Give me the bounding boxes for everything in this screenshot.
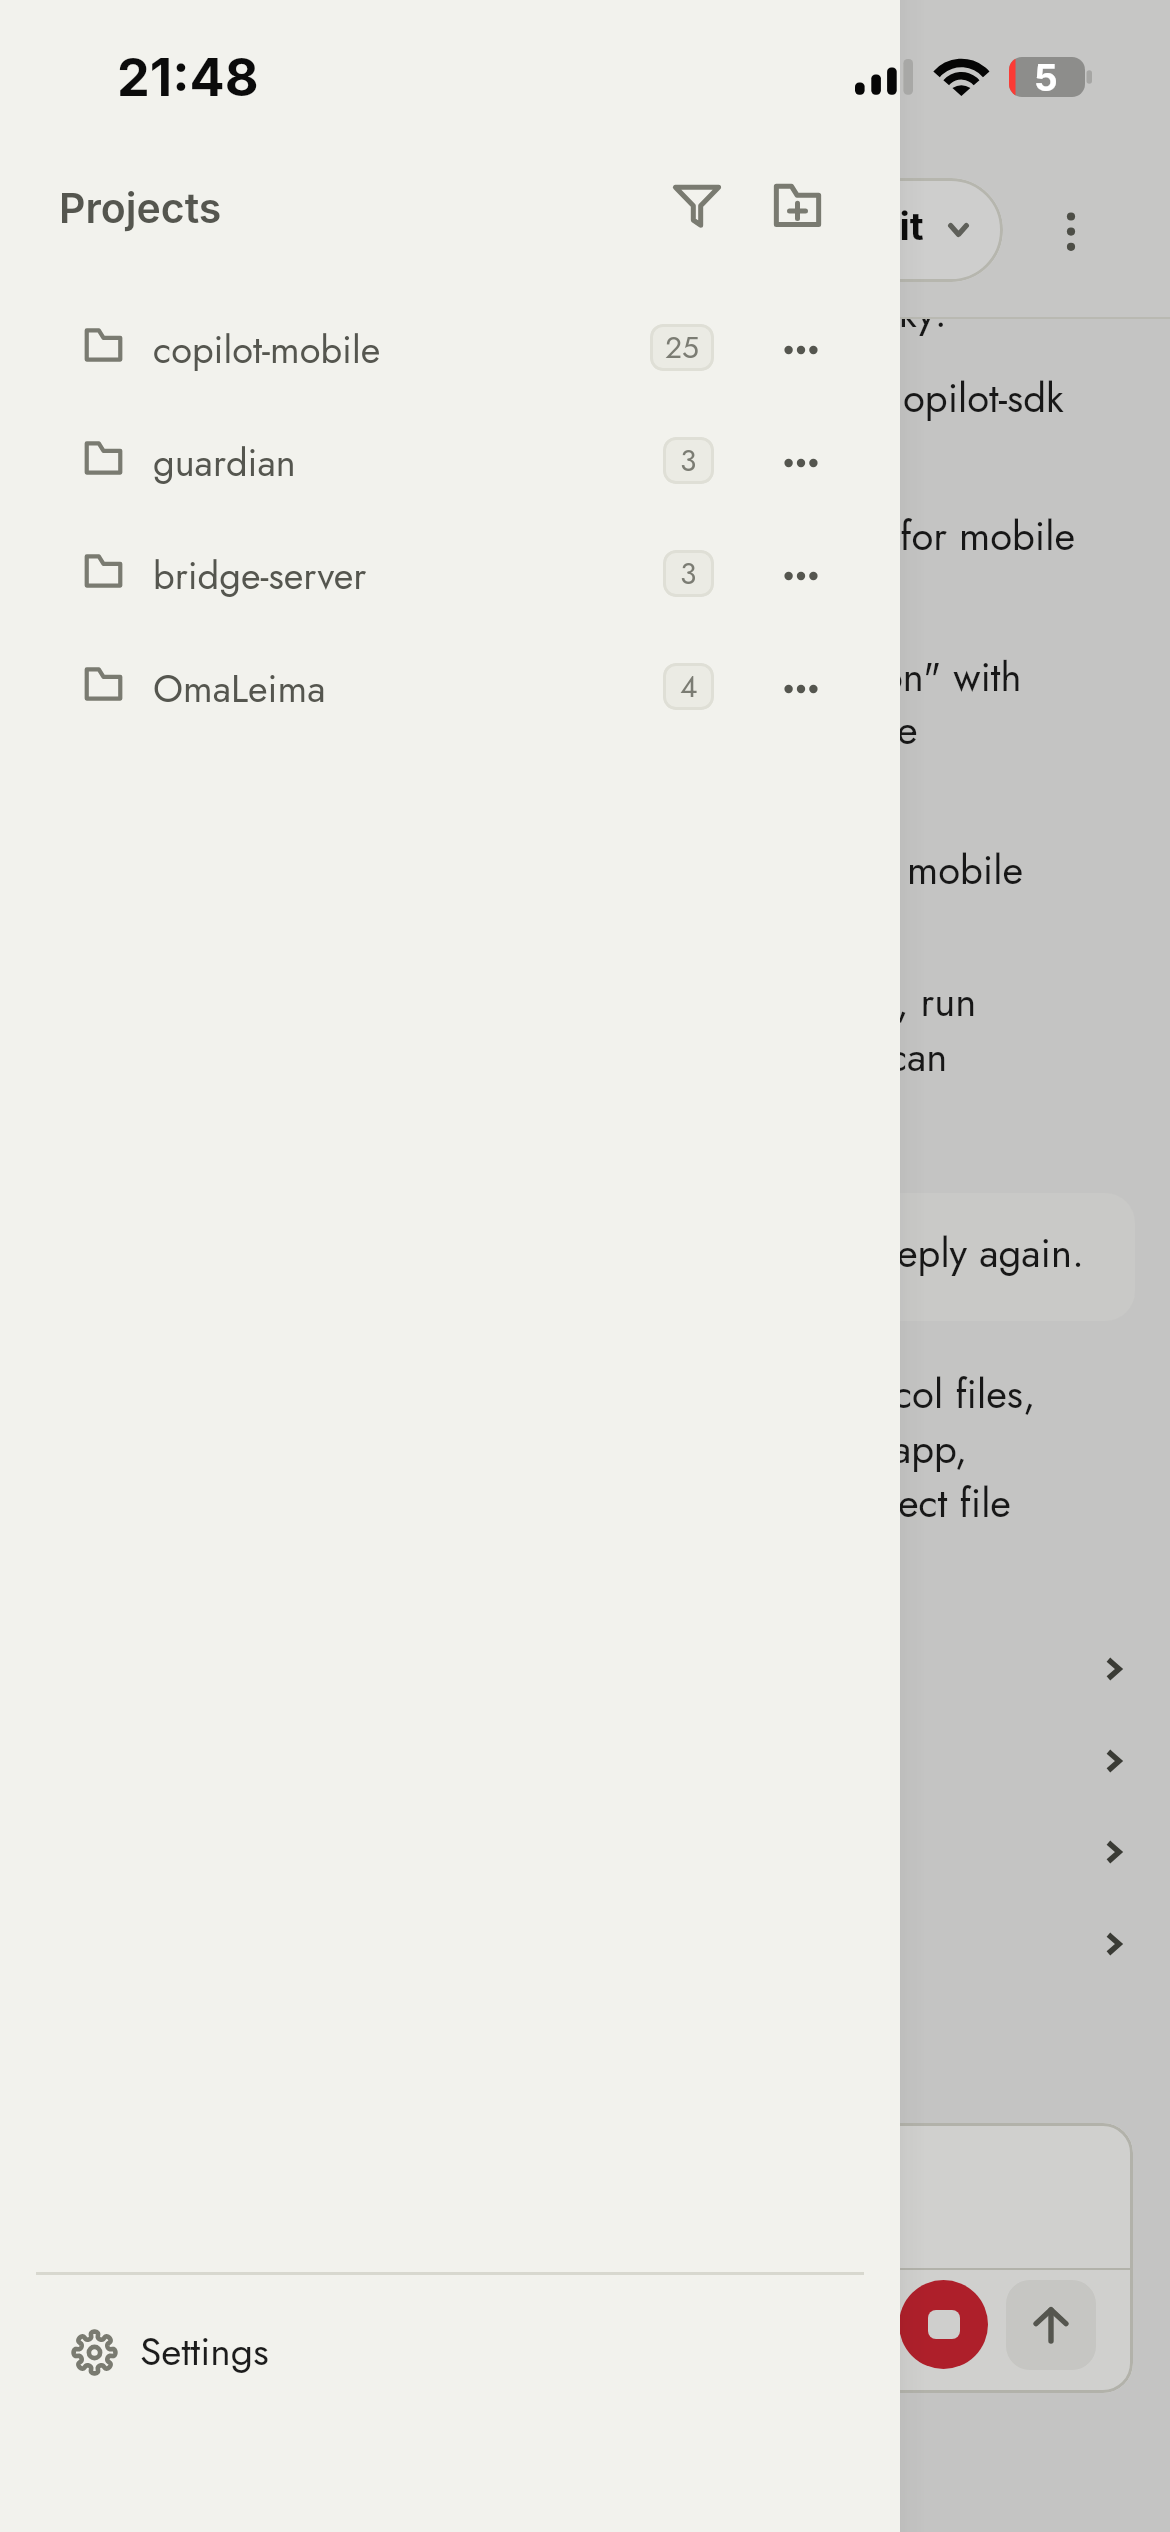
staticText: ect file — [898, 1474, 1011, 1532]
button[interactable]: More options — [766, 543, 832, 609]
button[interactable]: More options — [766, 656, 832, 722]
staticText: mobile — [907, 841, 1024, 899]
button[interactable]: guardian — [0, 404, 900, 517]
button[interactable]: copilot-mobile — [0, 291, 900, 404]
button[interactable]: New folder — [760, 168, 834, 242]
staticText: col files, — [893, 1365, 1036, 1423]
staticText: 4 — [680, 665, 698, 708]
button[interactable]: Git — [700, 178, 1003, 282]
staticText: 3 — [680, 552, 697, 595]
button[interactable]: Filter — [660, 168, 734, 242]
staticText: app, — [892, 1420, 968, 1478]
staticText: Settings — [140, 2323, 269, 2379]
button[interactable]: bridge-server — [0, 517, 900, 630]
staticText: 25 — [665, 326, 699, 369]
button[interactable]: Stop — [899, 2280, 988, 2369]
staticText: opilot-sdk — [903, 369, 1064, 427]
staticText: 21:48 — [117, 46, 259, 109]
button[interactable]: Settings — [0, 2272, 900, 2432]
staticText: Projects — [59, 183, 222, 233]
staticText: bridge-server — [153, 548, 367, 603]
button[interactable]: OmaLeima — [0, 630, 900, 743]
staticText: guardian — [153, 435, 296, 490]
staticText: can — [888, 1028, 948, 1086]
staticText: 3 — [680, 439, 697, 482]
staticText: 5 — [1034, 55, 1058, 100]
staticText: ky: — [899, 284, 947, 342]
staticText: for mobile — [900, 507, 1076, 565]
staticText: Git — [871, 203, 924, 249]
staticText: on" with — [881, 648, 1022, 706]
button[interactable]: Send — [1006, 2280, 1096, 2370]
staticText: OmaLeima — [153, 661, 326, 716]
staticText: e — [897, 701, 918, 759]
staticText: copilot-mobile — [153, 322, 381, 377]
staticText: eply again. — [897, 1224, 1084, 1282]
button[interactable]: More options — [766, 317, 832, 383]
button[interactable]: More — [1032, 190, 1114, 272]
button[interactable]: More options — [766, 430, 832, 496]
staticText: l, run — [887, 973, 977, 1031]
